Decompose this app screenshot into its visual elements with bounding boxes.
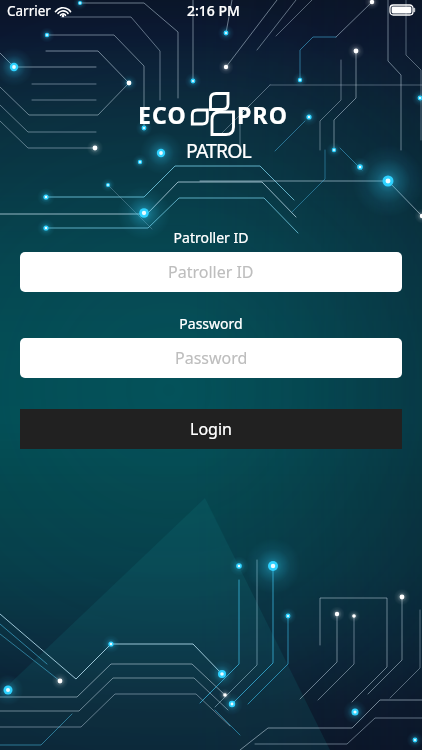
- staticText: Password: [0, 314, 422, 333]
- staticText: PATROL: [186, 137, 251, 164]
- staticText: 2:16 PM: [187, 1, 240, 20]
- staticText: ECO: [138, 99, 187, 130]
- staticText: Carrier: [7, 2, 51, 20]
- staticText: PRO: [237, 99, 289, 130]
- button[interactable]: Password: [20, 338, 402, 378]
- other: Battery full: [390, 5, 416, 15]
- staticText: Patroller ID: [168, 261, 254, 283]
- button[interactable]: Patroller ID: [20, 252, 402, 292]
- button[interactable]: Login: [20, 409, 402, 449]
- staticText: Password: [175, 347, 248, 369]
- staticText: Login: [190, 418, 232, 440]
- staticText: Patroller ID: [0, 228, 422, 247]
